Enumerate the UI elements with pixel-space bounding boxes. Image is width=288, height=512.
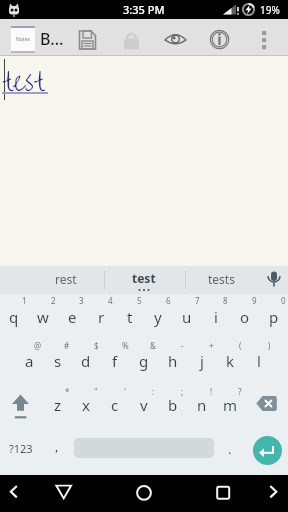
staticText: t — [127, 307, 133, 327]
button[interactable]: e — [58, 302, 86, 332]
staticText: + — [209, 340, 214, 351]
button[interactable] — [2, 387, 40, 423]
button[interactable]: z — [44, 390, 72, 420]
button[interactable]: j — [188, 346, 216, 376]
staticText: B... — [40, 28, 64, 50]
button[interactable]: Notes — [11, 26, 35, 53]
staticText: " — [94, 386, 98, 397]
staticText: . — [228, 440, 232, 458]
staticText: rest — [55, 271, 77, 287]
button[interactable]: f — [101, 346, 129, 376]
button[interactable]: v — [130, 390, 158, 420]
staticText: ?123 — [9, 441, 33, 456]
staticText: 3:35 PM — [123, 2, 165, 17]
button[interactable]: c — [101, 390, 129, 420]
button[interactable]: q — [0, 302, 28, 332]
staticText: @ — [34, 340, 42, 351]
button[interactable] — [0, 56, 288, 266]
staticText: ! — [210, 386, 213, 397]
staticText: # — [64, 340, 70, 351]
button[interactable]: test — [105, 264, 183, 292]
button[interactable]: g — [130, 346, 158, 376]
button[interactable]: ?123 — [1, 431, 41, 465]
staticText: k — [226, 351, 235, 371]
button[interactable]: s — [44, 346, 72, 376]
button[interactable] — [128, 477, 160, 511]
button[interactable]: n — [188, 390, 216, 420]
staticText: 1 — [22, 295, 27, 306]
button[interactable]: r — [87, 302, 115, 332]
staticText: tests — [208, 271, 235, 287]
staticText: i — [214, 307, 218, 327]
button[interactable] — [48, 477, 80, 511]
button[interactable] — [253, 436, 282, 465]
button[interactable]: b — [159, 390, 187, 420]
button[interactable] — [248, 387, 286, 423]
staticText: p — [269, 307, 279, 327]
button[interactable]: p — [260, 302, 288, 332]
button[interactable] — [207, 477, 239, 511]
button[interactable]: h — [159, 346, 187, 376]
staticText: test — [2, 58, 44, 107]
button[interactable]: , — [44, 429, 70, 463]
button[interactable] — [250, 24, 278, 54]
staticText: u — [182, 307, 192, 327]
button[interactable]: l — [245, 346, 273, 376]
button[interactable]: o — [231, 302, 259, 332]
staticText: ( — [239, 340, 242, 351]
staticText: * — [65, 386, 70, 397]
button[interactable]: x — [72, 390, 100, 420]
button[interactable]: k — [216, 346, 244, 376]
staticText: 19% — [260, 3, 280, 17]
button[interactable]: d — [72, 346, 100, 376]
staticText: d — [81, 351, 91, 371]
staticText: s — [54, 351, 62, 371]
staticText: y — [154, 307, 162, 327]
button[interactable]: a — [15, 346, 43, 376]
staticText: g — [139, 351, 149, 371]
staticText: a — [25, 351, 34, 371]
staticText: ' — [124, 386, 126, 397]
staticText: 9 — [252, 295, 257, 306]
button[interactable] — [73, 24, 103, 54]
button[interactable]: . — [217, 432, 243, 466]
staticText: 6 — [166, 295, 171, 306]
staticText: 3 — [79, 295, 84, 306]
staticText: h — [168, 351, 178, 371]
staticText: Notes — [16, 36, 30, 43]
staticText: & — [150, 340, 156, 351]
staticText: 4 — [108, 295, 113, 306]
staticText: q — [9, 307, 19, 327]
staticText: m — [223, 395, 238, 415]
staticText: c — [111, 395, 119, 415]
button[interactable]: w — [29, 302, 57, 332]
button[interactable] — [258, 266, 288, 294]
button[interactable] — [258, 477, 288, 511]
button[interactable]: i — [202, 302, 230, 332]
staticText: ; — [181, 386, 184, 397]
staticText: % — [122, 340, 129, 351]
staticText: test — [132, 270, 156, 286]
button[interactable] — [204, 24, 234, 54]
staticText: 8 — [223, 295, 228, 306]
button[interactable] — [161, 24, 191, 54]
staticText: , — [55, 437, 59, 455]
staticText: $ — [94, 340, 99, 351]
staticText: l — [257, 351, 261, 371]
button[interactable]: rest — [28, 265, 104, 293]
staticText: x — [82, 395, 90, 415]
staticText: : — [152, 386, 155, 397]
button[interactable]: y — [144, 302, 172, 332]
button[interactable] — [0, 477, 30, 511]
button[interactable]: m — [216, 390, 244, 420]
button[interactable]: u — [173, 302, 201, 332]
button[interactable] — [117, 24, 147, 54]
staticText: j — [200, 351, 204, 371]
staticText: v — [140, 395, 148, 415]
button[interactable]: tests — [186, 265, 256, 293]
staticText: 5 — [137, 295, 142, 306]
button[interactable]: t — [116, 302, 144, 332]
staticText: 2 — [51, 295, 56, 306]
staticText: b — [168, 395, 178, 415]
